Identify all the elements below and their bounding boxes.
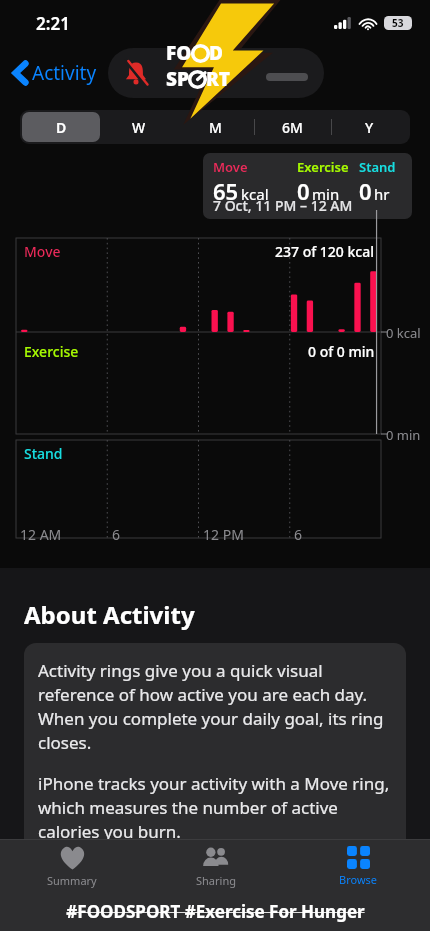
staticText: About Activity: [24, 598, 195, 631]
button[interactable]: Sharing: [144, 840, 287, 892]
button[interactable]: Summary: [0, 840, 144, 892]
staticText: Stand: [24, 444, 63, 463]
staticText: Move: [24, 242, 61, 261]
staticText: min: [312, 184, 340, 204]
button[interactable]: Y: [331, 112, 408, 142]
staticText: Activity rings give you a quick visual r…: [38, 659, 392, 754]
button[interactable]: 6M: [254, 112, 331, 142]
staticText: W: [132, 118, 146, 137]
staticText: Exercise: [297, 158, 349, 176]
staticText: Sharing: [196, 873, 236, 888]
staticText: 6: [294, 525, 303, 544]
button[interactable]: M: [177, 112, 254, 142]
staticText: D: [209, 40, 223, 66]
staticText: 0 kcal: [386, 324, 421, 342]
button[interactable]: Activity: [10, 56, 101, 90]
staticText: 0 of 0 min: [308, 342, 375, 361]
staticText: 237 of 120 kcal: [275, 242, 375, 261]
staticText: Move: [213, 158, 248, 176]
staticText: FO: [166, 40, 192, 66]
staticText: 7 Oct, 11 PM – 12 AM: [213, 196, 353, 215]
other: Notifications muted: [124, 61, 148, 85]
staticText: 6: [112, 525, 121, 544]
staticText: kcal: [241, 184, 269, 204]
staticText: 0 min: [386, 426, 421, 444]
staticText: 12 PM: [203, 525, 244, 544]
staticText: #FOODSPORT #Exercise For Hunger: [66, 900, 365, 923]
staticText: 2:21: [36, 12, 70, 35]
staticText: M: [209, 118, 222, 137]
staticText: 6M: [282, 118, 303, 137]
staticText: Browse: [339, 872, 378, 887]
staticText: 12 AM: [20, 525, 62, 544]
staticText: Stand: [359, 158, 396, 176]
button[interactable]: D: [22, 112, 100, 142]
staticText: 53: [392, 16, 404, 30]
staticText: Summary: [47, 873, 97, 888]
staticText: Y: [365, 118, 374, 137]
staticText: Exercise: [24, 342, 79, 361]
staticText: 0: [297, 176, 310, 206]
staticText: Activity: [32, 60, 97, 86]
staticText: D: [56, 118, 67, 137]
button[interactable]: W: [100, 112, 177, 142]
button[interactable]: Notifications muted: [108, 48, 324, 98]
staticText: SP: [166, 66, 189, 92]
staticText: hr: [374, 184, 390, 204]
staticText: 65: [213, 176, 239, 206]
staticText: 0: [359, 176, 372, 206]
staticText: RT: [206, 66, 231, 92]
button[interactable]: Browse: [287, 840, 430, 892]
staticText: iPhone tracks your activity with a Move …: [38, 772, 392, 843]
